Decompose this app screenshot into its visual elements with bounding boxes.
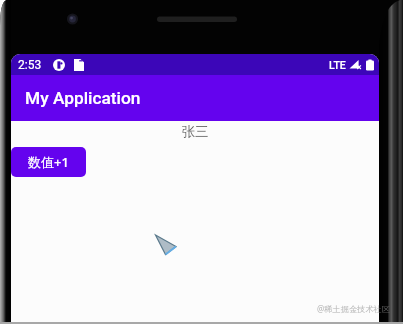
staticText: 数值+1 xyxy=(28,153,69,171)
staticText: 张三 xyxy=(11,123,379,140)
staticText: My Application xyxy=(25,88,141,108)
staticText: LTE xyxy=(329,59,346,71)
staticText: 2:53 xyxy=(18,58,42,72)
button[interactable]: 数值+1 xyxy=(11,147,86,177)
staticText: @稀土掘金技术社区 xyxy=(317,303,390,314)
